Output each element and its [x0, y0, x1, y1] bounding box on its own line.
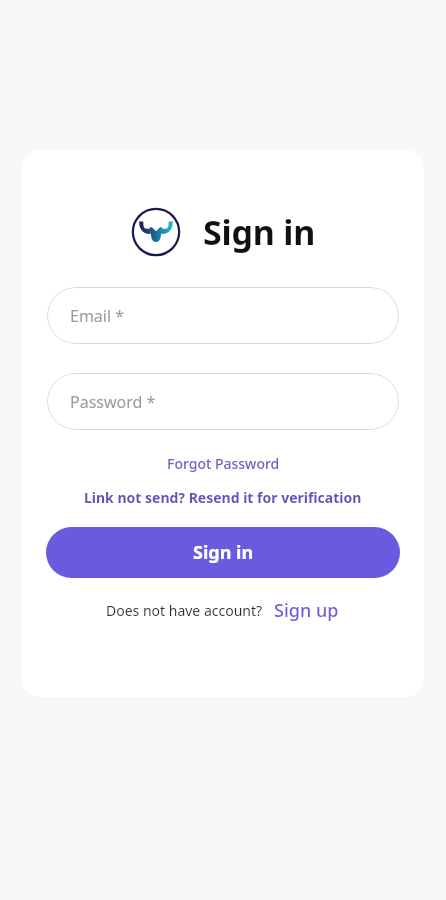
staticText: Does not have account? [106, 601, 263, 620]
button[interactable]: Sign in [46, 527, 400, 578]
button[interactable]: Forgot Password [161, 452, 286, 475]
staticText: Password * [70, 391, 156, 413]
staticText: Forgot Password [167, 454, 280, 473]
button[interactable]: Email * [47, 287, 399, 344]
other: App logo [131, 207, 181, 257]
button[interactable]: Password * [47, 373, 399, 430]
button[interactable]: Sign up [272, 596, 341, 625]
staticText: Email * [70, 305, 125, 327]
staticText: Sign in [193, 540, 254, 565]
staticText: Link not send? Resend it for verificatio… [84, 488, 362, 507]
staticText: Sign in [203, 209, 316, 255]
staticText: Sign up [274, 598, 339, 623]
button[interactable]: Link not send? Resend it for verificatio… [78, 486, 368, 509]
